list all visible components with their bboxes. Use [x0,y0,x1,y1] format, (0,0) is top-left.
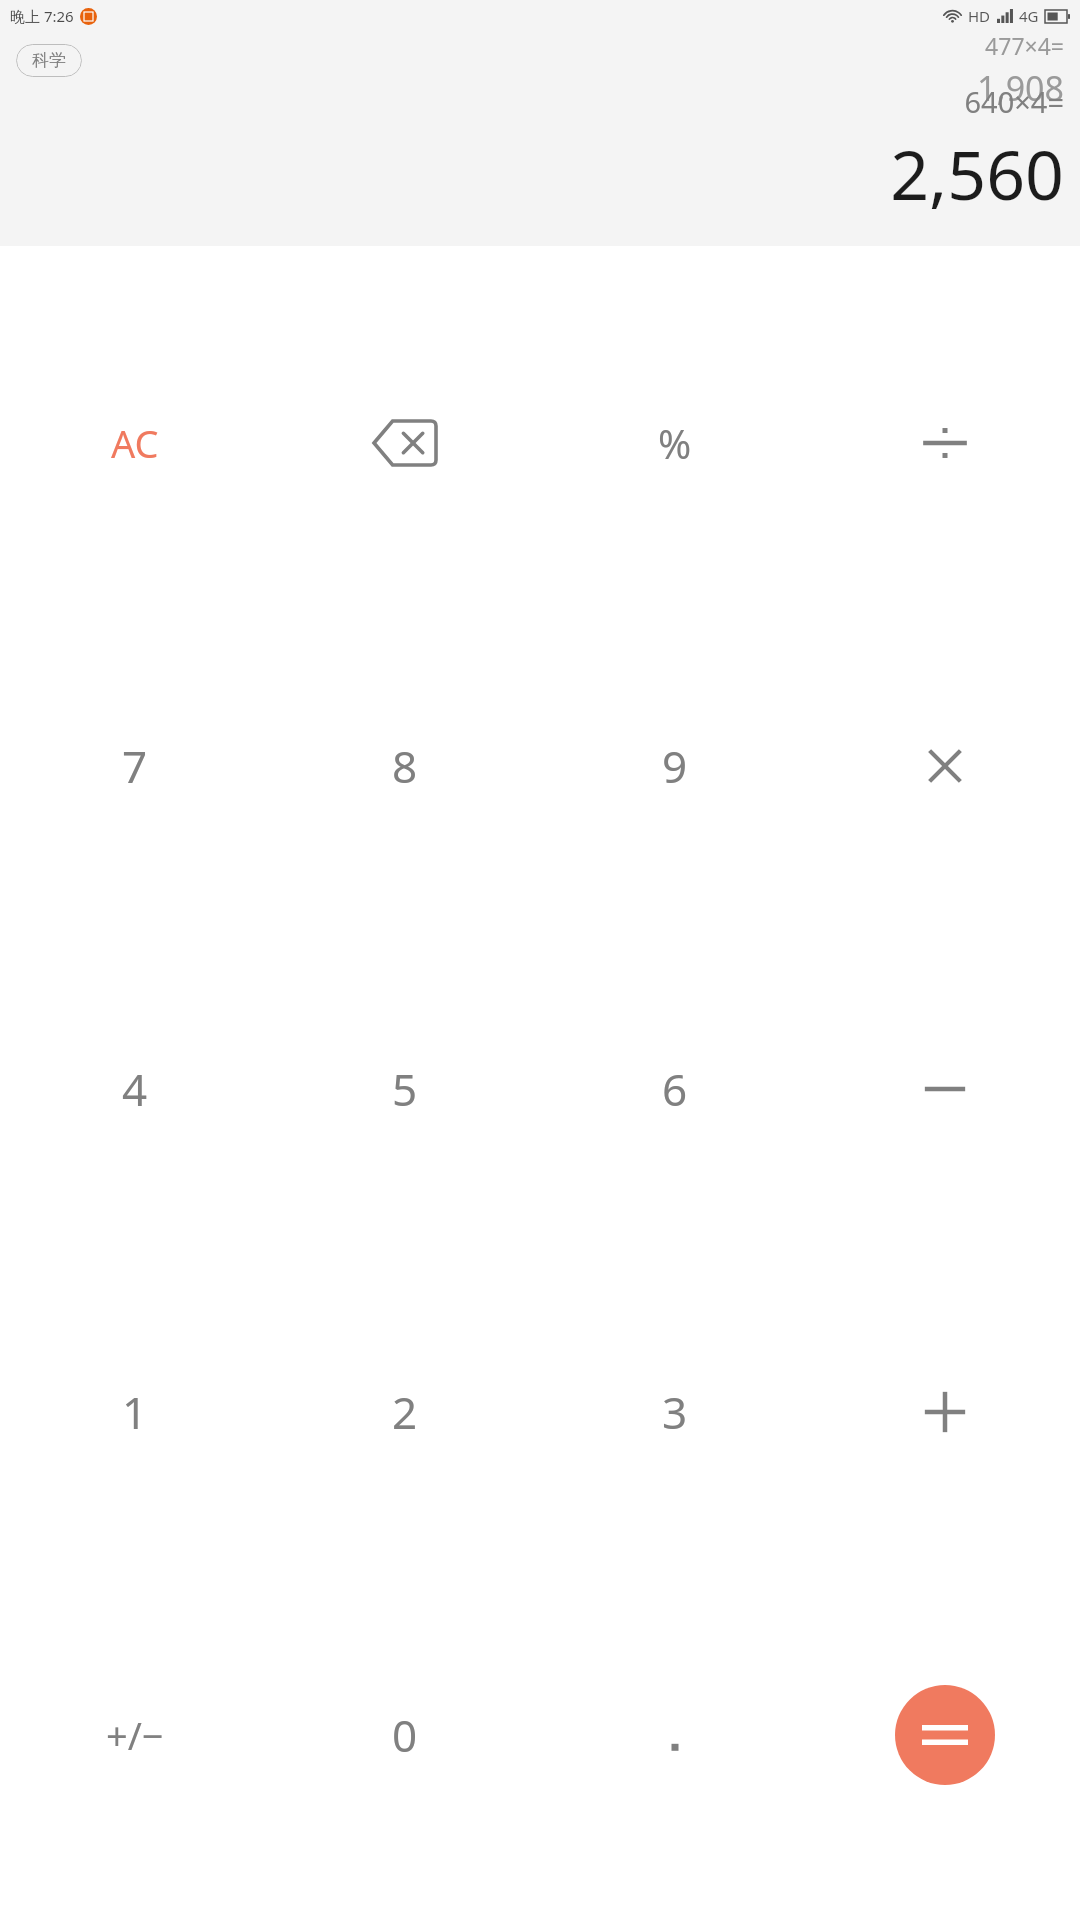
staticText: 晚上 7:26 [10,6,74,26]
staticText: 7 [122,736,148,796]
button[interactable]: 6 [540,927,810,1250]
staticText: 2 [392,1382,418,1442]
button[interactable]: Equals [895,1685,995,1785]
staticText: 640×4= [964,82,1064,121]
staticText: 2,560 [890,127,1064,220]
staticText: 4G [1019,6,1039,26]
button[interactable]: Divide [810,282,1080,604]
staticText: 5 [392,1059,418,1119]
button[interactable]: Multiply [810,604,1080,927]
button[interactable]: 7 [0,604,270,927]
button[interactable]: 2 [270,1250,540,1573]
staticText: % [658,416,692,470]
button[interactable]: AC [0,282,270,604]
staticText: 1,908 [977,65,1064,111]
staticText: 4 [122,1059,148,1119]
staticText: 科学 [32,50,66,71]
staticText: 3 [662,1382,688,1442]
button[interactable]: Minus [810,927,1080,1250]
button[interactable]: Plus [810,1250,1080,1573]
staticText: 1 [122,1382,148,1442]
staticText: 477×4= [985,30,1064,61]
button[interactable]: +/− [0,1573,270,1896]
button[interactable]: 5 [270,927,540,1250]
button[interactable]: % [540,282,810,604]
button[interactable]: 0 [270,1573,540,1896]
button[interactable]: Backspace [270,282,540,604]
button[interactable]: 3 [540,1250,810,1573]
staticText: +/− [106,1709,164,1761]
button[interactable]: 9 [540,604,810,927]
staticText: 9 [662,736,688,796]
staticText: 0 [392,1705,418,1765]
button[interactable]: 4 [0,927,270,1250]
staticText: AC [111,417,159,469]
staticText: 8 [392,736,418,796]
button[interactable]: 8 [270,604,540,927]
staticText: 6 [662,1059,688,1119]
staticText: HD [968,6,991,26]
button[interactable]: 科学 [16,44,82,77]
button[interactable]: 1 [0,1250,270,1573]
